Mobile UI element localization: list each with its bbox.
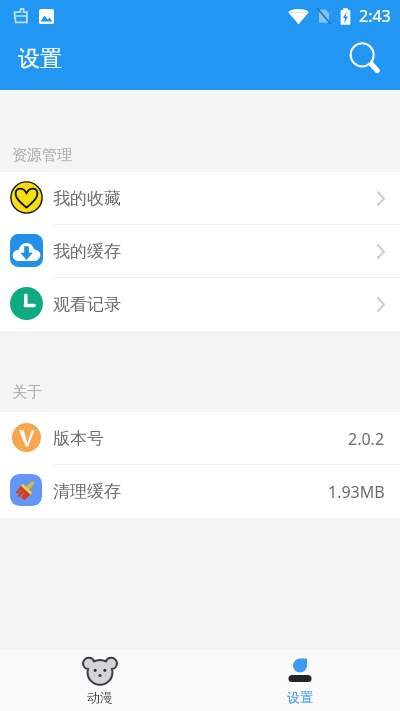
staticText: 我的收藏	[53, 188, 121, 209]
button[interactable]: 观看记录	[0, 278, 400, 331]
button[interactable]: 动漫	[0, 650, 200, 711]
staticText: 关于	[12, 383, 42, 402]
button[interactable]: 版本号	[0, 412, 400, 465]
staticText: 1.93MB	[328, 481, 385, 503]
staticText: 我的缓存	[53, 241, 121, 262]
button[interactable]: 我的缓存	[0, 225, 400, 278]
button[interactable]: 清理缓存	[0, 465, 400, 518]
staticText: 2.0.2	[348, 428, 385, 450]
staticText: 2:43	[359, 5, 391, 27]
staticText: 动漫	[87, 689, 113, 705]
staticText: 版本号	[53, 428, 104, 449]
button[interactable]: 我的收藏	[0, 172, 400, 225]
button[interactable]: 设置	[200, 650, 400, 711]
staticText: 设置	[287, 689, 313, 705]
staticText: 清理缓存	[53, 481, 121, 502]
staticText: 设置	[18, 45, 62, 73]
button[interactable]: Search	[342, 35, 388, 81]
staticText: 观看记录	[53, 294, 121, 315]
staticText: 资源管理	[12, 146, 72, 165]
